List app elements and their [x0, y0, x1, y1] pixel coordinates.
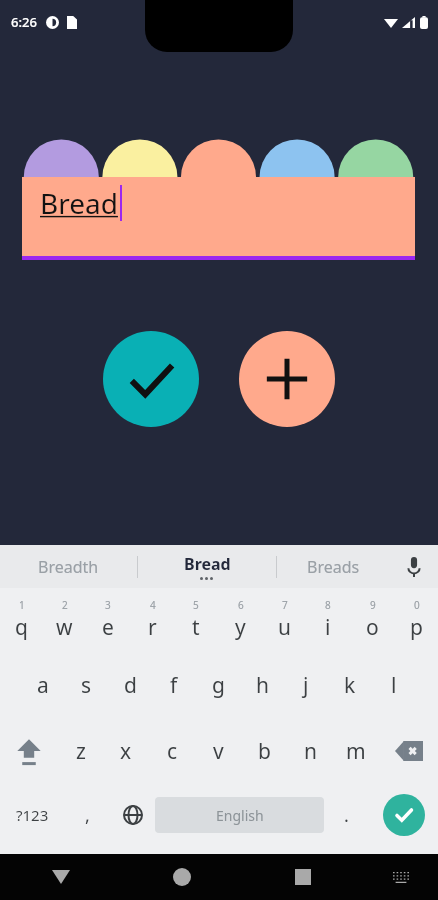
staticText: w: [56, 613, 73, 642]
staticText: English: [216, 806, 264, 825]
staticText: u: [278, 613, 291, 642]
button[interactable]: Recents: [242, 854, 363, 900]
staticText: .: [344, 803, 349, 828]
staticText: l: [391, 671, 397, 700]
staticText: d: [124, 671, 137, 700]
staticText: k: [344, 671, 356, 700]
button[interactable]: Breads: [277, 545, 390, 588]
button[interactable]: 1: [0, 588, 43, 652]
button[interactable]: Change language: [110, 784, 155, 846]
staticText: 9: [370, 598, 376, 612]
staticText: 8: [325, 598, 331, 612]
staticText: a: [37, 671, 49, 700]
staticText: 7: [282, 598, 288, 612]
staticText: 5: [193, 598, 199, 612]
button[interactable]: Confirm: [103, 331, 199, 427]
button[interactable]: Enter: [369, 784, 438, 846]
staticText: c: [167, 737, 178, 766]
button[interactable]: f: [152, 652, 196, 718]
button[interactable]: Switch keyboard: [363, 854, 438, 900]
button[interactable]: c: [149, 718, 195, 784]
button[interactable]: Bread: [138, 545, 276, 588]
button[interactable]: Voice input: [390, 545, 438, 588]
staticText: Bread: [184, 553, 231, 575]
button[interactable]: .: [324, 784, 369, 846]
staticText: 6: [238, 598, 244, 612]
button[interactable]: x: [103, 718, 149, 784]
button[interactable]: 3: [86, 588, 130, 652]
button[interactable]: 7: [262, 588, 306, 652]
button[interactable]: g: [196, 652, 240, 718]
staticText: ,: [85, 803, 90, 828]
button[interactable]: d: [108, 652, 152, 718]
button[interactable]: 2: [43, 588, 86, 652]
staticText: n: [304, 737, 317, 766]
staticText: g: [212, 671, 225, 700]
button[interactable]: m: [333, 718, 379, 784]
staticText: y: [235, 613, 246, 642]
button[interactable]: Add: [239, 331, 335, 427]
button[interactable]: k: [328, 652, 372, 718]
staticText: t: [192, 613, 200, 642]
staticText: q: [15, 613, 28, 642]
button[interactable]: a: [21, 652, 64, 718]
staticText: ?123: [16, 805, 49, 825]
staticText: j: [303, 671, 309, 700]
staticText: z: [76, 737, 86, 766]
button[interactable]: 5: [174, 588, 218, 652]
button[interactable]: English: [155, 797, 324, 833]
button[interactable]: 4: [130, 588, 174, 652]
staticText: Bread: [40, 184, 118, 222]
staticText: s: [81, 671, 92, 700]
staticText: 1: [19, 598, 25, 612]
button[interactable]: n: [287, 718, 333, 784]
staticText: 2: [62, 598, 68, 612]
staticText: f: [170, 671, 178, 700]
staticText: x: [120, 737, 132, 766]
button[interactable]: Backspace: [379, 718, 438, 784]
button[interactable]: h: [240, 652, 284, 718]
button[interactable]: 0: [394, 588, 438, 652]
button[interactable]: Hide keyboard: [0, 854, 121, 900]
staticText: o: [366, 613, 379, 642]
button[interactable]: ?123: [0, 784, 65, 846]
button[interactable]: Home: [121, 854, 242, 900]
button[interactable]: 6: [218, 588, 262, 652]
staticText: e: [102, 613, 114, 642]
staticText: 4: [150, 598, 156, 612]
staticText: 3: [105, 598, 111, 612]
button[interactable]: Breadth: [0, 545, 137, 588]
staticText: r: [148, 613, 157, 642]
staticText: v: [213, 737, 224, 766]
button[interactable]: ,: [65, 784, 110, 846]
staticText: Breadth: [38, 556, 99, 578]
button[interactable]: 9: [350, 588, 394, 652]
button[interactable]: Shift: [0, 718, 58, 784]
staticText: Breads: [307, 556, 360, 578]
button[interactable]: z: [58, 718, 103, 784]
button[interactable]: b: [241, 718, 287, 784]
staticText: b: [258, 737, 271, 766]
staticText: i: [325, 613, 331, 642]
staticText: h: [256, 671, 269, 700]
staticText: 6:26: [11, 13, 37, 31]
button[interactable]: j: [284, 652, 328, 718]
button[interactable]: 8: [306, 588, 350, 652]
button[interactable]: s: [64, 652, 108, 718]
staticText: p: [410, 613, 423, 642]
button[interactable]: l: [372, 652, 416, 718]
staticText: m: [346, 737, 366, 766]
staticText: 0: [414, 598, 420, 612]
button[interactable]: v: [195, 718, 241, 784]
